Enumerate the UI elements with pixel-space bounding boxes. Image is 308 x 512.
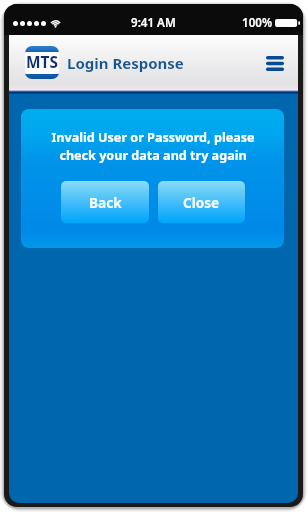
staticText: MTS [26,52,58,73]
button[interactable]: Back [61,181,149,223]
button[interactable]: Close [158,181,245,223]
staticText: Back [89,193,122,212]
button[interactable]: Open navigation menu [258,43,292,83]
staticText: Login Response [67,53,184,73]
staticText: Invalid User or Password, please check y… [51,129,255,164]
staticText: 100% [242,15,273,31]
staticText: 9:41 AM [131,15,176,31]
staticText: Close [183,193,220,212]
